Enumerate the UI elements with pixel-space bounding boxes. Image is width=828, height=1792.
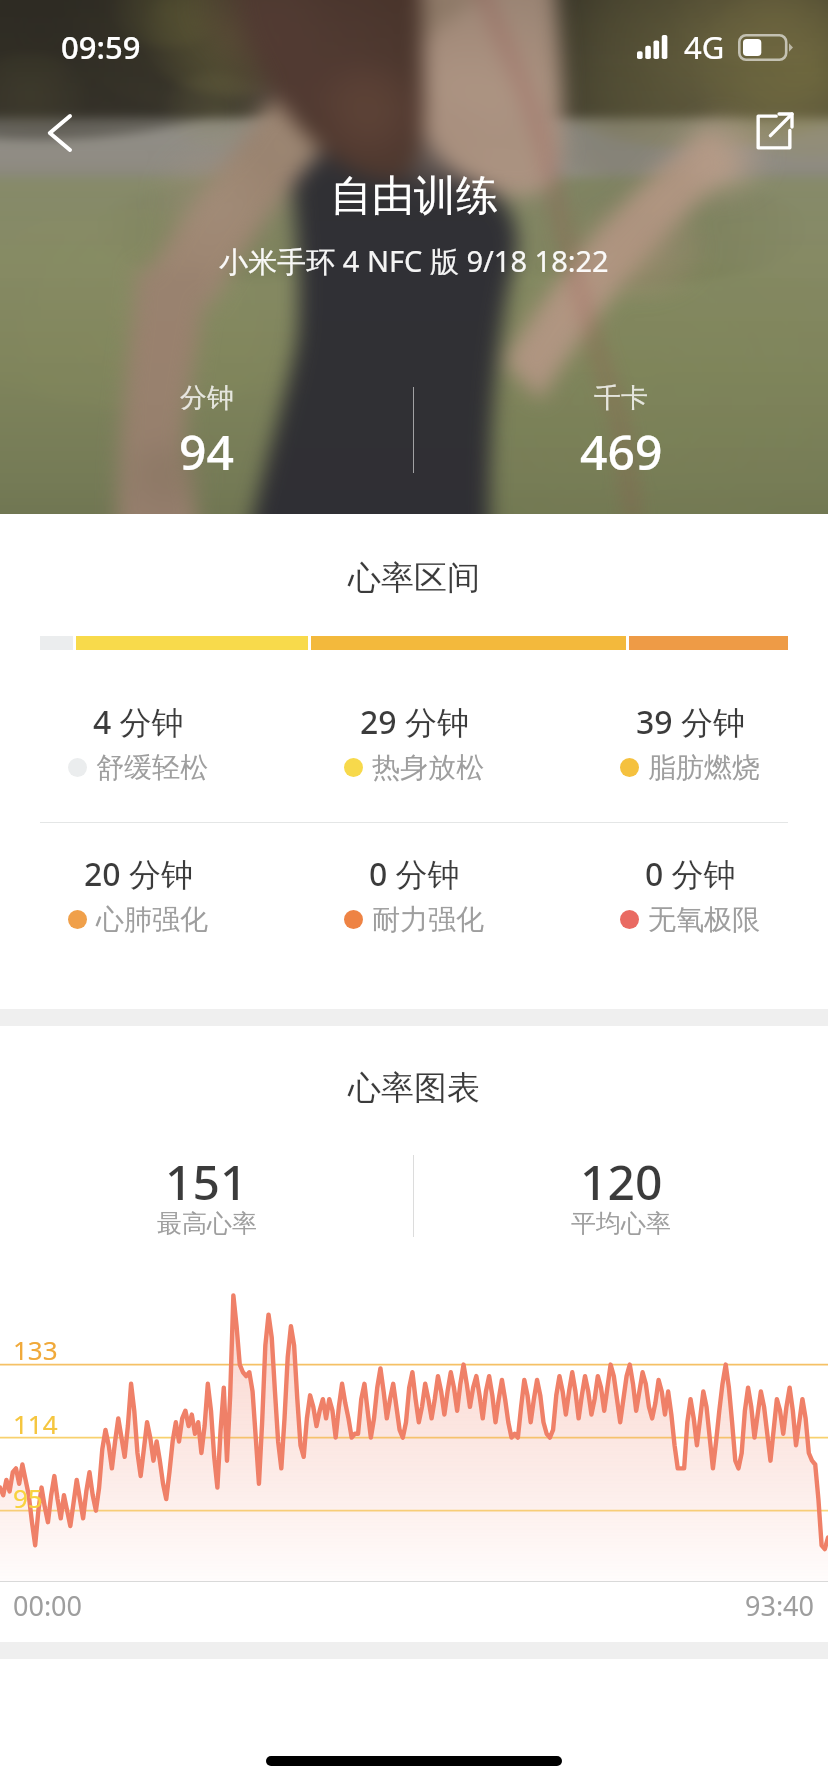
- staticText: 29 分钟: [360, 700, 469, 744]
- staticText: 自由训练: [330, 170, 498, 223]
- button[interactable]: 39 分钟: [552, 700, 828, 785]
- staticText: 120: [580, 1149, 663, 1214]
- staticText: 耐力强化: [372, 902, 484, 937]
- staticText: 最高心率: [157, 1208, 257, 1239]
- staticText: 4 分钟: [93, 700, 184, 744]
- button[interactable]: 20 分钟: [0, 852, 276, 937]
- button[interactable]: 0 分钟: [552, 852, 828, 937]
- button[interactable]: Share: [738, 96, 810, 168]
- staticText: 无氧极限: [648, 902, 760, 937]
- staticText: 469: [580, 419, 663, 484]
- staticText: 脂肪燃烧: [648, 750, 760, 785]
- staticText: 151: [165, 1149, 248, 1214]
- staticText: 0 分钟: [645, 852, 736, 896]
- staticText: 心率图表: [0, 1067, 828, 1109]
- staticText: 94: [179, 419, 234, 484]
- button[interactable]: Back: [24, 98, 94, 168]
- button[interactable]: 4 分钟: [0, 700, 276, 785]
- staticText: 千卡: [594, 381, 648, 415]
- staticText: 114: [13, 1406, 58, 1441]
- button[interactable]: 29 分钟: [276, 700, 552, 785]
- staticText: 心率区间: [0, 557, 828, 599]
- staticText: 4G: [684, 26, 725, 68]
- staticText: 心肺强化: [96, 902, 208, 937]
- button[interactable]: 0 分钟: [276, 852, 552, 937]
- staticText: 分钟: [180, 381, 234, 415]
- staticText: 20 分钟: [84, 852, 193, 896]
- staticText: 平均心率: [571, 1208, 671, 1239]
- staticText: 09:59: [61, 26, 141, 68]
- staticText: 133: [13, 1332, 58, 1367]
- staticText: 舒缓轻松: [96, 750, 208, 785]
- staticText: 00:00: [13, 1587, 83, 1624]
- staticText: 0 分钟: [369, 852, 460, 896]
- staticText: 小米手环 4 NFC 版 9/18 18:22: [219, 241, 609, 281]
- staticText: 热身放松: [372, 750, 484, 785]
- staticText: 95: [13, 1480, 43, 1515]
- staticText: 39 分钟: [636, 700, 745, 744]
- staticText: 93:40: [745, 1587, 815, 1624]
